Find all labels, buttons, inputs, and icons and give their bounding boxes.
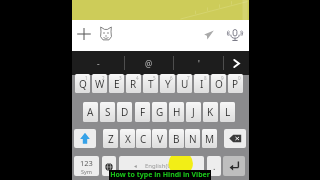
staticText: Q xyxy=(79,77,87,91)
button[interactable]: Backspace xyxy=(224,129,246,148)
button[interactable]: 9 xyxy=(211,74,226,93)
staticText: I xyxy=(200,77,204,91)
staticText: T xyxy=(148,77,154,91)
staticText: G xyxy=(156,105,164,119)
staticText: A xyxy=(87,105,94,119)
staticText: N xyxy=(189,132,197,146)
button[interactable]: 4 xyxy=(126,74,141,93)
staticText: English(UK) xyxy=(145,162,178,170)
staticText: K xyxy=(207,105,214,119)
staticText: O xyxy=(215,77,223,91)
staticText: V xyxy=(157,132,163,146)
button[interactable]: 7 xyxy=(177,74,192,93)
staticText: E xyxy=(114,77,120,91)
button[interactable]: Stickers xyxy=(98,26,114,42)
button[interactable]: Add attachment xyxy=(76,26,92,42)
staticText: Sym xyxy=(81,168,92,175)
button[interactable]: G xyxy=(152,102,167,122)
staticText: W xyxy=(95,77,105,91)
staticText: 5 xyxy=(153,75,156,81)
button[interactable]: F xyxy=(135,102,150,122)
staticText: 123 xyxy=(80,158,93,168)
staticText: ' xyxy=(198,58,200,69)
staticText: @ xyxy=(145,58,153,69)
staticText: M xyxy=(205,132,215,146)
button[interactable]: L xyxy=(220,102,235,122)
button[interactable]: J xyxy=(186,102,201,122)
staticText: U xyxy=(181,77,189,91)
button[interactable]: Symbols xyxy=(74,156,99,176)
button[interactable]: Change keyboard xyxy=(102,156,116,176)
staticText: B xyxy=(173,132,180,146)
button[interactable]: H xyxy=(169,102,184,122)
staticText: 0 xyxy=(238,75,241,81)
staticText: 1 xyxy=(85,75,88,81)
staticText: S xyxy=(105,105,111,119)
staticText: 2 xyxy=(102,75,105,81)
button[interactable]: Z xyxy=(103,129,118,148)
button[interactable]: N xyxy=(185,129,200,148)
staticText: 6 xyxy=(170,75,173,81)
staticText: C xyxy=(140,132,147,146)
button[interactable]: X xyxy=(120,129,135,148)
button[interactable]: More suggestions xyxy=(223,51,249,75)
staticText: H xyxy=(173,105,181,119)
button[interactable]: 6 xyxy=(160,74,175,93)
button[interactable]: @ xyxy=(124,51,173,75)
staticText: L xyxy=(225,105,231,119)
button[interactable]: 2 xyxy=(92,74,107,93)
staticText: 3 xyxy=(119,75,122,81)
button[interactable]: M xyxy=(202,129,217,148)
staticText: D xyxy=(121,105,129,119)
button[interactable]: - xyxy=(72,51,124,75)
button[interactable]: 8 xyxy=(194,74,209,93)
staticText: F xyxy=(140,105,146,119)
button[interactable]: C xyxy=(136,129,151,148)
staticText: 7 xyxy=(187,75,190,81)
button[interactable]: Voice message xyxy=(227,27,243,43)
staticText: X xyxy=(125,132,131,146)
staticText: J xyxy=(192,105,195,119)
button[interactable]: Period xyxy=(207,156,221,176)
staticText: Z xyxy=(108,132,114,146)
staticText: 8 xyxy=(204,75,207,81)
button[interactable]: ' xyxy=(173,51,224,75)
button[interactable]: Shift xyxy=(74,129,96,148)
button[interactable]: Enter xyxy=(223,156,245,176)
button[interactable]: Send xyxy=(204,30,214,40)
staticText: 9 xyxy=(221,75,224,81)
button[interactable]: 3 xyxy=(109,74,124,93)
button[interactable]: B xyxy=(169,129,184,148)
button[interactable]: V xyxy=(152,129,167,148)
button[interactable]: K xyxy=(203,102,218,122)
staticText: . xyxy=(213,160,216,172)
button[interactable]: D xyxy=(117,102,132,122)
button[interactable]: S xyxy=(100,102,115,122)
staticText: 4 xyxy=(136,75,139,81)
button[interactable]: 5 xyxy=(143,74,158,93)
button[interactable]: 0 xyxy=(228,74,243,93)
staticText: How to type in Hindi in Viber xyxy=(110,170,210,180)
staticText: R xyxy=(130,77,137,91)
staticText: Y xyxy=(165,77,171,91)
button[interactable]: 1 xyxy=(75,74,90,93)
staticText: P xyxy=(232,77,239,91)
button[interactable]: A xyxy=(83,102,98,122)
button[interactable]: Space xyxy=(119,156,204,176)
staticText: - xyxy=(97,58,100,69)
